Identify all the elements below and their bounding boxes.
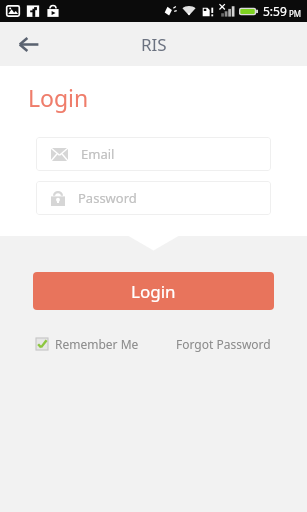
button[interactable]: Email [36,137,271,171]
button[interactable]: Login [33,272,274,310]
button[interactable]: Remember Me [36,332,139,356]
staticText: Email [81,145,115,163]
staticText: Password [78,189,137,207]
button[interactable]: Password [36,181,271,215]
staticText: PM [289,8,302,19]
staticText: Remember Me [55,336,139,352]
staticText: Login [28,82,89,113]
button[interactable]: Forgot Password [176,332,271,356]
staticText: Forgot Password [176,336,271,352]
button[interactable]: Back [8,24,48,64]
staticText: 5:59 [263,3,287,19]
staticText: Login [131,280,176,303]
staticText: RIS [141,33,167,56]
